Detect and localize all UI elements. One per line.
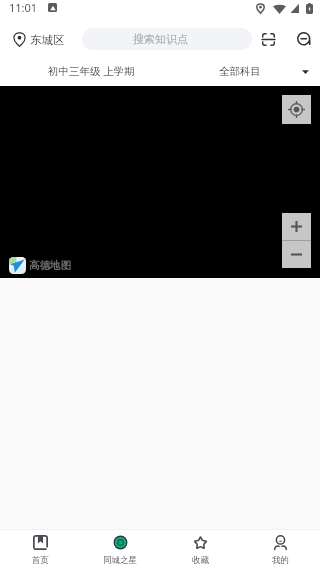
- staticText: 搜索知识点: [133, 32, 188, 46]
- button[interactable]: 东城区: [12, 29, 66, 50]
- staticText: 东城区: [30, 33, 65, 47]
- staticText: 我的: [272, 555, 289, 566]
- button[interactable]: 同城之星: [80, 535, 160, 566]
- button[interactable]: 缩小: [282, 241, 311, 268]
- staticText: 高德地图: [29, 259, 71, 272]
- staticText: 初中三年级 上学期: [48, 64, 135, 78]
- staticText: 首页: [32, 555, 49, 566]
- button[interactable]: 收藏: [160, 535, 240, 566]
- button[interactable]: 放大: [282, 213, 311, 240]
- staticText: 全部科目: [219, 65, 261, 78]
- button[interactable]: 搜索知识点: [82, 28, 252, 50]
- button[interactable]: 定位: [282, 95, 311, 124]
- staticText: 收藏: [192, 555, 209, 566]
- button[interactable]: 初中三年级 上学期: [0, 64, 160, 78]
- button[interactable]: 消息: [296, 31, 312, 47]
- staticText: 同城之星: [103, 555, 137, 566]
- button[interactable]: 全部科目: [160, 65, 320, 78]
- button[interactable]: 我的: [240, 535, 320, 566]
- staticText: 11:01: [9, 0, 38, 15]
- button[interactable]: 扫一扫: [257, 28, 279, 50]
- button[interactable]: 首页: [0, 535, 80, 566]
